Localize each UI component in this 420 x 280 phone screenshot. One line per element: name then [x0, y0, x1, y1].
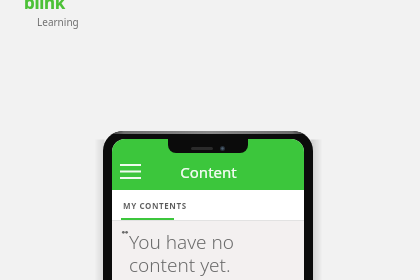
staticText: Content — [180, 162, 237, 182]
staticText: blink — [24, 0, 65, 14]
staticText: Learning — [37, 15, 79, 29]
button[interactable]: blink — [22, 0, 68, 29]
button[interactable]: MY CONTENTS — [112, 191, 201, 221]
staticText: You have no content yet. — [129, 229, 235, 278]
staticText: MY CONTENTS — [123, 200, 187, 211]
button[interactable]: Open navigation menu — [112, 153, 148, 189]
